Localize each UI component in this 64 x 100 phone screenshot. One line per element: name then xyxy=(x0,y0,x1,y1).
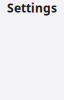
staticText: Settings xyxy=(7,0,57,16)
